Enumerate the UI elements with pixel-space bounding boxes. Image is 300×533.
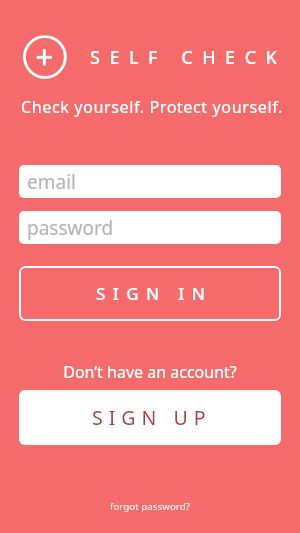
- button[interactable]: Self Check logo: [23, 34, 67, 78]
- staticText: Don’t have an account?: [0, 361, 300, 383]
- button[interactable]: email: [19, 165, 281, 198]
- staticText: Check yourself. Protect yourself.: [21, 96, 283, 118]
- staticText: forgot password?: [110, 500, 190, 513]
- button[interactable]: SIGN UP: [19, 390, 281, 445]
- button[interactable]: password: [19, 211, 281, 244]
- button[interactable]: forgot password?: [0, 493, 300, 519]
- staticText: SELF CHECK: [90, 45, 287, 70]
- staticText: SIGN IN: [96, 282, 213, 305]
- staticText: password: [27, 215, 114, 241]
- staticText: email: [27, 169, 76, 195]
- button[interactable]: SIGN IN: [19, 266, 281, 321]
- staticText: SIGN UP: [92, 404, 212, 431]
